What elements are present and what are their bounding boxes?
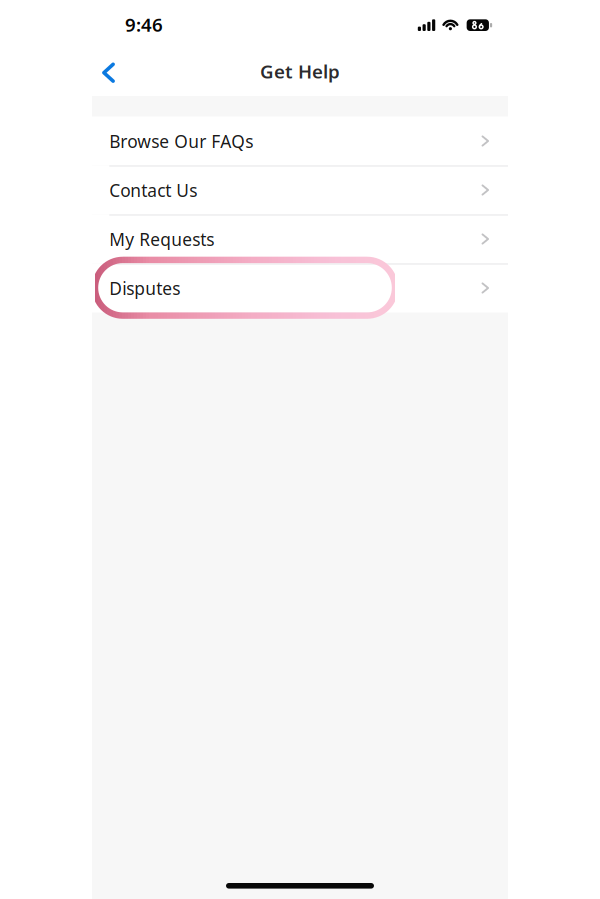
staticText: Contact Us <box>109 179 197 202</box>
button[interactable]: My Requests <box>92 214 508 263</box>
staticText: 9:46 <box>125 12 163 37</box>
staticText: Disputes <box>109 277 180 300</box>
staticText: My Requests <box>109 228 214 251</box>
button[interactable]: Contact Us <box>92 165 508 214</box>
button[interactable]: Browse Our FAQs <box>92 116 508 165</box>
staticText: Browse Our FAQs <box>109 130 253 153</box>
button[interactable]: Disputes <box>92 263 508 312</box>
button[interactable]: Back <box>88 53 128 93</box>
staticText: Get Help <box>260 59 340 84</box>
